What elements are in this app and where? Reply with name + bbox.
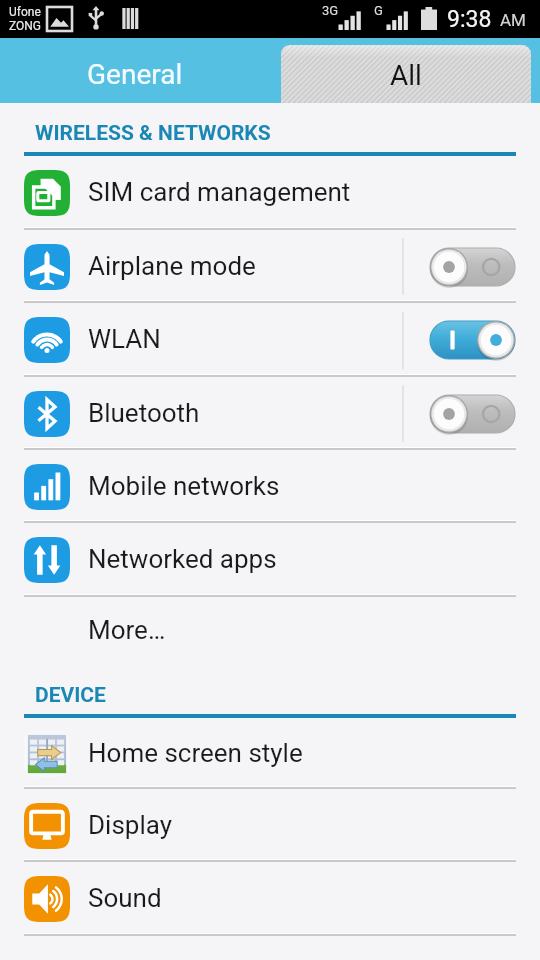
staticText: WIRELESS & NETWORKS [35,121,271,146]
button[interactable]: Home screen style [0,718,540,789]
staticText: Networked apps [88,544,277,574]
button[interactable]: All [281,45,531,103]
staticText: Mobile networks [88,471,280,501]
staticText: Bluetooth [88,398,200,428]
button[interactable]: More… [0,597,540,665]
button[interactable]: Bluetooth [0,377,540,450]
staticText: 3G [322,3,339,18]
staticText: Display [88,810,172,840]
button[interactable]: SIM card management [0,156,540,230]
button[interactable]: Display [0,789,540,862]
staticText: Home screen style [88,738,303,768]
staticText: AM [500,10,526,30]
button[interactable]: Switch on [430,321,515,359]
staticText: SIM card management [88,177,351,207]
staticText: Airplane mode [88,251,256,281]
staticText: More… [88,615,166,645]
staticText: DEVICE [35,683,106,708]
button[interactable]: Switch off [430,248,515,286]
button[interactable]: Networked apps [0,523,540,597]
staticText: General [87,58,183,91]
staticText: WLAN [88,324,161,354]
staticText: 9:38 [447,6,492,33]
staticText: Sound [88,883,162,913]
button[interactable]: WLAN [0,303,540,377]
button[interactable]: Sound [0,862,540,936]
button[interactable]: Mobile networks [0,450,540,523]
button[interactable]: Switch off [430,395,515,433]
button[interactable]: Airplane mode [0,230,540,303]
staticText: G [374,3,383,18]
staticText: ZONG [9,19,42,33]
staticText: All [390,59,422,92]
button[interactable]: General [0,38,277,103]
staticText: Ufone [9,5,41,19]
